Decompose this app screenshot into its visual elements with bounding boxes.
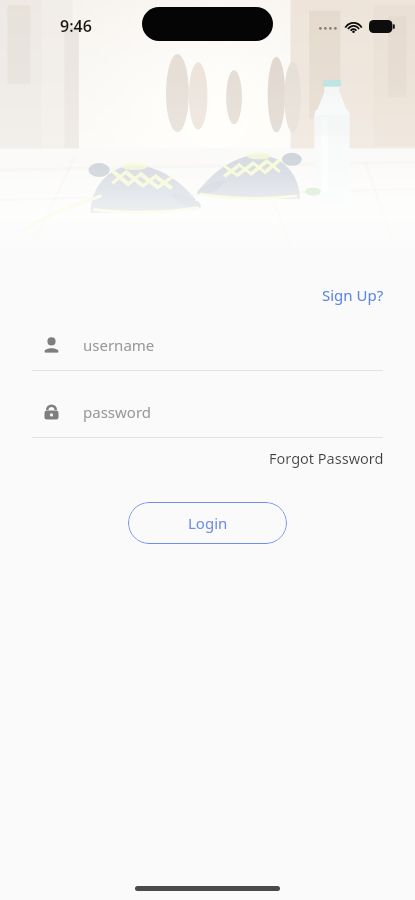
other: Wi-Fi <box>345 20 362 33</box>
button[interactable]: Sign Up? <box>291 283 415 307</box>
other: Password <box>42 403 61 422</box>
button[interactable]: Login <box>128 502 287 544</box>
staticText: Forgot Password <box>269 448 384 468</box>
staticText: Sign Up? <box>322 285 384 305</box>
staticText: Login <box>188 513 228 533</box>
staticText: 9:46 <box>60 15 92 37</box>
other: Username <box>42 336 61 355</box>
staticText: username <box>83 335 155 355</box>
button[interactable]: Password <box>0 397 415 438</box>
button[interactable]: Username <box>0 330 415 371</box>
other: Cellular signal <box>318 21 338 33</box>
other: Battery <box>369 20 395 33</box>
staticText: password <box>83 402 151 422</box>
button[interactable]: Forgot Password <box>238 446 415 470</box>
